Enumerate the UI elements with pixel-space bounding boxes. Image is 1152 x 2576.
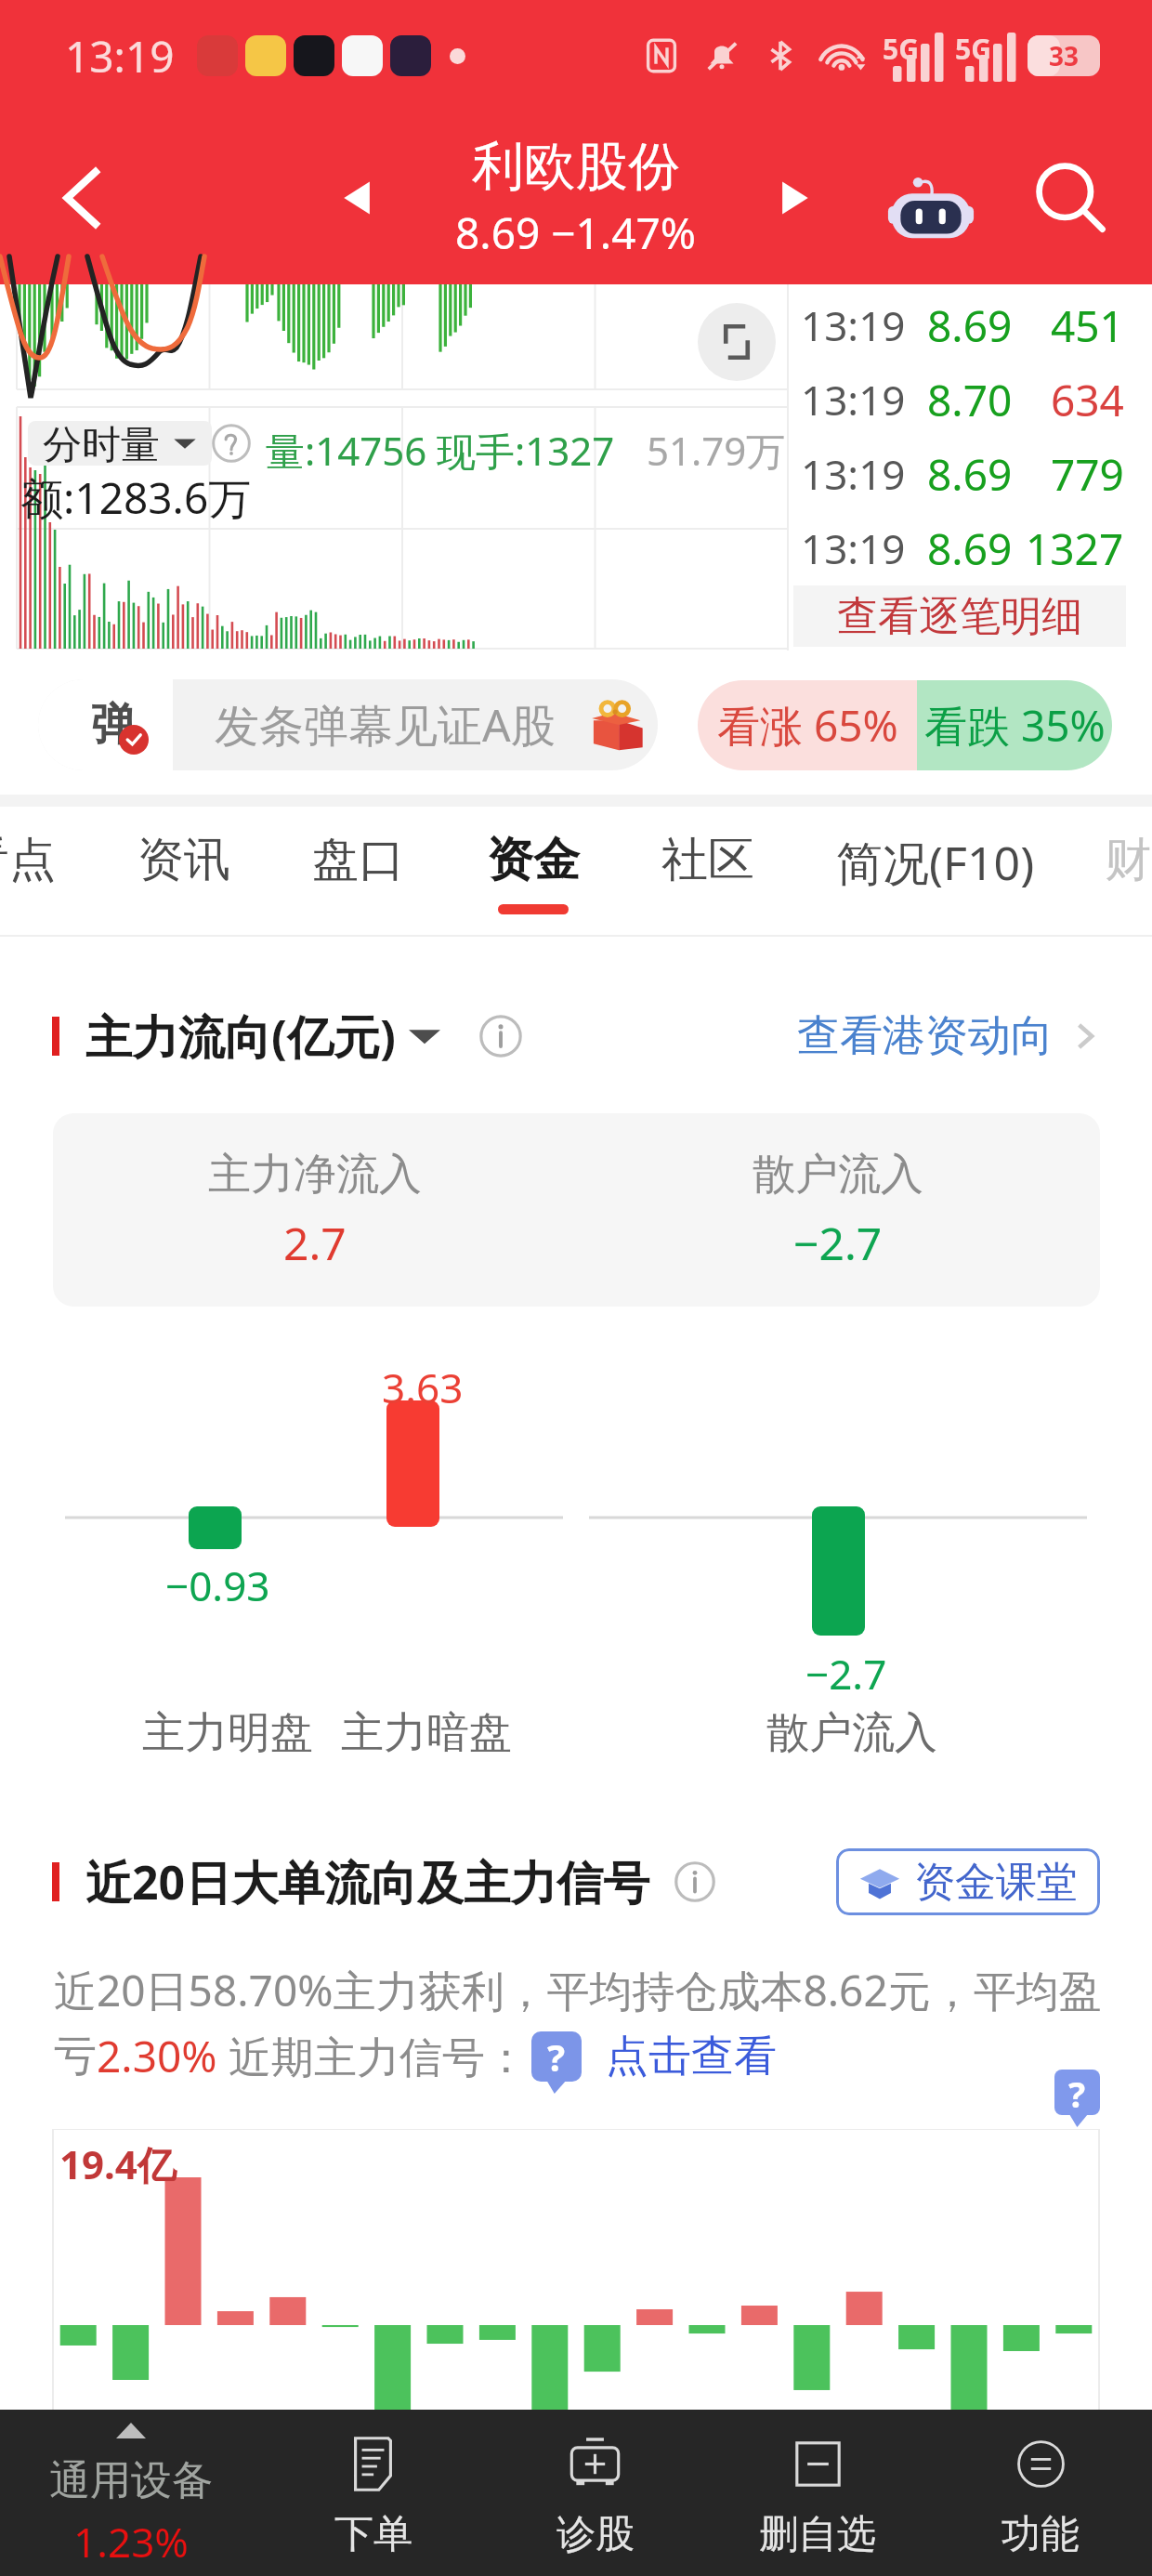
staticText: 5G [955,30,991,68]
button[interactable]: 分时量 [43,421,197,466]
button[interactable]: 诊股 [484,2410,706,2576]
button[interactable]: 查看港资动向 [797,1009,1104,1063]
button[interactable]: Switch metric [409,1020,440,1052]
staticText: 亏 [54,2030,97,2083]
staticText: 主力流向(亿元) [85,1005,396,1068]
button[interactable]: Help [1054,2070,1100,2115]
staticText: 1327 [1026,519,1124,578]
button[interactable]: Previous stock [307,147,409,249]
staticText: 5G [883,30,919,68]
button[interactable]: AI assistant [875,142,987,254]
staticText: 利欧股份 [472,134,680,200]
staticText: 8.69 [927,519,1013,578]
staticText: 近20日58.70%主力获利，平均持仓成本8.62元，平均盈 [54,1961,1102,2019]
button[interactable]: 利欧股份 [455,134,697,262]
staticText: 451 [1051,296,1124,355]
staticText: 下单 [334,2510,412,2559]
staticText: 13:19 [801,372,906,427]
button[interactable]: 查看逐笔明细 [793,585,1126,647]
button[interactable]: 看涨 65% [698,680,917,770]
staticText: 主力暗盘 [341,1706,512,1760]
button[interactable]: Next stock [743,147,845,249]
button[interactable]: 社区 [661,807,754,937]
staticText: 功能 [1001,2510,1080,2559]
staticText: 近20日大单流向及主力信号 [85,1850,650,1913]
staticText: 19.4亿 [59,2137,177,2190]
button[interactable]: Search [1011,138,1132,258]
staticText: 散户流入 [766,1706,937,1760]
staticText: 简况(F10) [836,831,1033,894]
button[interactable]: 功能 [929,2410,1152,2576]
button[interactable]: 看跌 35% [917,680,1112,770]
button[interactable]: 弹 [38,679,658,770]
button[interactable]: 资讯 [137,807,230,937]
staticText: 现手:1327 [437,424,615,477]
staticText: 8.69 [927,296,1013,355]
staticText: 13:19 [801,446,906,502]
button[interactable]: 删自选 [706,2410,929,2576]
button[interactable]: 资金 [487,807,580,937]
button[interactable]: 下单 [262,2410,484,2576]
staticText: 通用设备 [49,2455,213,2506]
staticText: 看涨 65% [717,696,898,755]
button[interactable]: Info [674,1861,715,1902]
staticText: 盘口 [312,831,405,889]
staticText: 2.7 [283,1213,347,1273]
button[interactable]: 看点 [0,807,56,937]
staticText: 删自选 [759,2510,876,2559]
staticText: 分时量 [43,421,160,466]
button[interactable]: Back [0,112,167,284]
staticText: 资讯 [137,831,230,889]
staticText: 资金 [487,831,580,889]
staticText: −2.7 [793,1213,883,1273]
button[interactable]: 通用设备 [0,2410,262,2576]
staticText: 主力净流入 [208,1148,422,1202]
button[interactable]: Fullscreen [698,303,776,381]
staticText: 弹 [91,697,136,753]
staticText: 13:19 [65,27,175,85]
button[interactable]: 盘口 [312,807,405,937]
staticText: 33 [1049,38,1080,73]
staticText: 量:14756 [266,424,427,477]
staticText: 发条弹幕见证A股 [215,694,556,756]
button[interactable]: 资金课堂 [858,1848,1078,1915]
staticText: 51.79万 [647,424,786,477]
staticText: −0.93 [165,1557,270,1613]
staticText: 8.69 [927,445,1013,504]
staticText: 查看港资动向 [797,1009,1054,1063]
staticText: 资金课堂 [914,1857,1078,1908]
staticText: 3.63 [382,1360,464,1415]
staticText: ? [547,2031,566,2082]
staticText: 13:19 [801,297,906,353]
staticText: 近期主力信号： [217,2027,528,2085]
staticText: 额:1283.6万 [20,468,252,527]
button[interactable]: Help [212,424,251,463]
staticText: 779 [1051,445,1124,504]
staticText: 主力明盘 [142,1706,313,1760]
button[interactable]: Info [479,1015,522,1058]
staticText: 诊股 [556,2510,635,2559]
staticText: −2.7 [805,1646,887,1702]
button[interactable]: 财 [1105,831,1151,889]
staticText: 8.70 [927,371,1013,429]
staticText: 1.23% [73,2514,189,2569]
staticText: 看点 [0,831,56,889]
staticText: ? [1068,2070,1086,2115]
staticText: 2.30% [97,2027,217,2085]
staticText: 散户流入 [753,1148,923,1202]
staticText: 8.69 −1.47% [455,204,697,262]
staticText: 查看逐笔明细 [837,591,1082,642]
staticText: 13:19 [801,520,906,576]
button[interactable]: 简况(F10) [836,807,1033,937]
button[interactable]: 点击查看 [606,2030,777,2083]
staticText: 634 [1051,371,1124,429]
staticText: 看跌 35% [924,696,1106,755]
staticText: 社区 [661,831,754,889]
button[interactable]: Signal help [531,2031,582,2082]
